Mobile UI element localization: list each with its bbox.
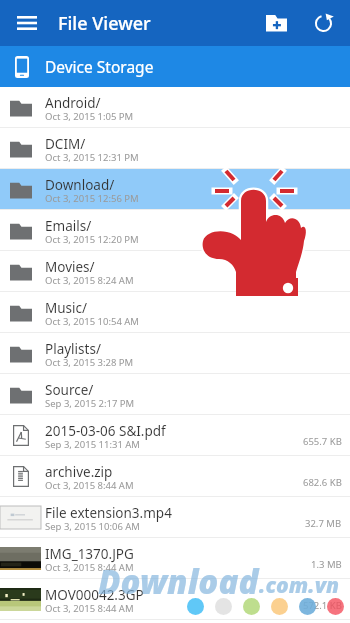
staticText: Oct 3, 2015 1:05 PM — [45, 110, 134, 123]
staticText: 2015-03-06 S&I.pdf — [45, 422, 166, 440]
button[interactable]: Movies/ — [0, 251, 350, 291]
staticText: Oct 3, 2015 10:54 AM — [45, 315, 139, 328]
staticText: 572.1 KB — [303, 599, 342, 612]
staticText: Oct 3, 2015 8:44 AM — [45, 561, 134, 574]
staticText: 655.7 KB — [303, 435, 342, 448]
staticText: File extension3.mp4 — [45, 504, 172, 522]
staticText: 682.6 KB — [303, 476, 342, 489]
staticText: archive.zip — [45, 463, 113, 481]
staticText: Emails/ — [45, 217, 92, 235]
staticText: Oct 3, 2015 8:44 AM — [45, 479, 134, 492]
button[interactable]: Open navigation menu — [0, 0, 53, 46]
staticText: Movies/ — [45, 258, 95, 276]
staticText: IMG_1370.JPG — [45, 545, 134, 563]
staticText: Oct 3, 2015 8:44 AM — [45, 602, 134, 615]
button[interactable]: File extension3.mp4 — [0, 497, 350, 537]
staticText: DCIM/ — [45, 135, 86, 153]
button[interactable]: 2015-03-06 S&I.pdf — [0, 415, 350, 455]
button[interactable]: IMG_1370.JPG — [0, 538, 350, 578]
staticText: .com.vn — [259, 571, 340, 600]
button[interactable]: Create new folder — [253, 0, 299, 46]
button[interactable]: archive.zip — [0, 456, 350, 496]
staticText: Oct 3, 2015 8:24 AM — [45, 274, 134, 287]
staticText: Music/ — [45, 299, 88, 317]
staticText: Sep 3, 2015 11:31 AM — [45, 438, 140, 451]
button[interactable]: Emails/ — [0, 210, 350, 250]
staticText: Oct 3, 2015 12:20 PM — [45, 233, 139, 246]
staticText: File Viewer — [58, 11, 151, 36]
staticText: Oct 3, 2015 3:28 PM — [45, 356, 134, 369]
staticText: Download — [98, 559, 259, 604]
staticText: 32.7 MB — [305, 517, 342, 530]
staticText: Sep 3, 2015 2:17 PM — [45, 397, 135, 410]
staticText: Device Storage — [45, 56, 154, 77]
staticText: Sep 3, 2015 10:06 AM — [45, 520, 140, 533]
button[interactable]: Android/ — [0, 87, 350, 127]
button[interactable]: Download/ — [0, 169, 350, 209]
staticText: Android/ — [45, 94, 101, 112]
staticText: Playlists/ — [45, 340, 101, 358]
button[interactable]: Music/ — [0, 292, 350, 332]
staticText: Oct 3, 2015 12:31 PM — [45, 151, 139, 164]
staticText: Source/ — [45, 381, 94, 399]
button[interactable]: Refresh — [299, 0, 347, 46]
staticText: 1.3 MB — [311, 558, 342, 571]
staticText: MOV00042.3GP — [45, 586, 144, 604]
staticText: Oct 3, 2015 12:56 PM — [45, 192, 139, 205]
button[interactable]: Device Storage — [0, 46, 350, 87]
button[interactable]: DCIM/ — [0, 128, 350, 168]
button[interactable]: Source/ — [0, 374, 350, 414]
staticText: Download/ — [45, 176, 115, 194]
button[interactable]: MOV00042.3GP — [0, 579, 350, 619]
button[interactable]: Playlists/ — [0, 333, 350, 373]
